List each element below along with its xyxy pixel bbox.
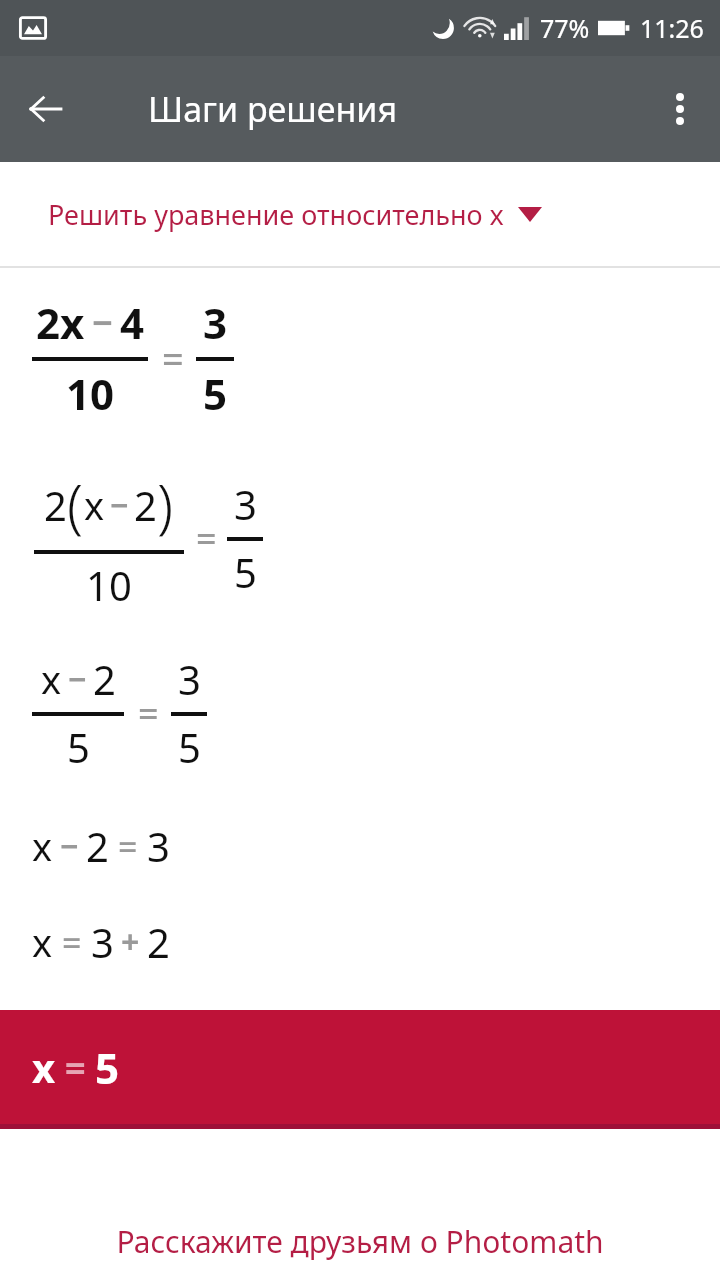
staticText: x bbox=[84, 479, 105, 531]
button[interactable]: Решить уравнение относительно x bbox=[0, 162, 720, 266]
staticText: 5 bbox=[234, 545, 257, 599]
staticText: = bbox=[118, 823, 138, 869]
staticText: = bbox=[138, 689, 159, 738]
staticText: 10 bbox=[86, 558, 132, 612]
staticText: − bbox=[68, 657, 87, 701]
staticText: x bbox=[32, 916, 53, 968]
staticText: = bbox=[62, 919, 82, 965]
staticText: 2 bbox=[134, 478, 157, 532]
button[interactable]: 2x bbox=[0, 268, 720, 448]
staticText: 2x bbox=[36, 294, 85, 351]
button[interactable]: x bbox=[0, 894, 720, 990]
staticText: = bbox=[65, 1043, 86, 1092]
staticText: 3 bbox=[91, 915, 114, 969]
staticText: 3 bbox=[178, 652, 201, 706]
staticText: 10 bbox=[66, 365, 115, 422]
button[interactable]: Back bbox=[20, 83, 72, 135]
staticText: ) bbox=[157, 465, 174, 544]
button[interactable]: More options bbox=[654, 83, 706, 135]
staticText: 2 bbox=[147, 915, 170, 969]
staticText: 2 bbox=[93, 652, 116, 706]
staticText: 3 bbox=[234, 477, 257, 531]
staticText: 11:26 bbox=[640, 11, 704, 45]
staticText: 5 bbox=[203, 365, 228, 422]
staticText: − bbox=[92, 298, 113, 347]
staticText: + bbox=[121, 920, 140, 964]
button[interactable]: x bbox=[0, 798, 720, 894]
button[interactable]: Расскажите друзьям о Photomath bbox=[0, 1203, 720, 1280]
staticText: 3 bbox=[203, 294, 228, 351]
staticText: 77% bbox=[540, 11, 590, 45]
staticText: x bbox=[32, 1040, 56, 1094]
staticText: 5 bbox=[95, 1039, 120, 1096]
staticText: − bbox=[60, 824, 79, 868]
staticText: = bbox=[196, 514, 217, 563]
staticText: 2 bbox=[86, 819, 109, 873]
button[interactable]: 2 bbox=[0, 448, 720, 628]
staticText: 2 bbox=[44, 478, 67, 532]
staticText: 4 bbox=[120, 294, 145, 351]
staticText: = bbox=[162, 332, 184, 384]
staticText: 5 bbox=[178, 720, 201, 774]
button[interactable]: x bbox=[0, 628, 720, 798]
button[interactable]: x bbox=[0, 1010, 720, 1124]
staticText: Шаги решения bbox=[148, 86, 398, 132]
staticText: − bbox=[110, 483, 129, 527]
staticText: x bbox=[32, 820, 53, 872]
staticText: Расскажите друзьям о Photomath bbox=[116, 1221, 604, 1262]
staticText: 5 bbox=[67, 720, 90, 774]
staticText: 3 bbox=[147, 819, 170, 873]
staticText: ( bbox=[67, 465, 84, 544]
staticText: x bbox=[41, 653, 62, 705]
staticText: Решить уравнение относительно x bbox=[48, 196, 504, 233]
